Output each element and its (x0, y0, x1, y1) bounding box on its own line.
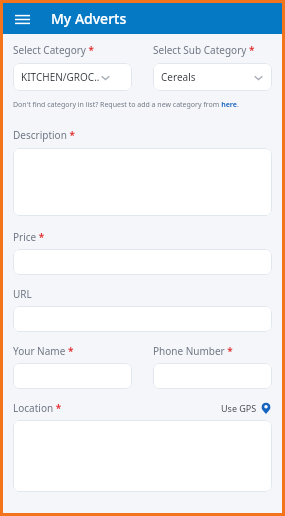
button[interactable]: KITCHEN/GROC.. (13, 63, 132, 91)
button[interactable]: Use GPS (221, 402, 272, 414)
staticText: Select Sub Category * (153, 43, 255, 57)
button[interactable]: Cereals (153, 63, 272, 91)
staticText: Cereals (161, 70, 196, 84)
staticText: KITCHEN/GROC.. (21, 70, 100, 84)
staticText: Use GPS (221, 402, 257, 414)
staticText: Select Category * (13, 43, 94, 57)
staticText: My Adverts (51, 9, 127, 28)
staticText: Description * (13, 128, 75, 142)
staticText: Price * (13, 230, 45, 244)
button[interactable]: Open navigation menu (9, 6, 35, 32)
button[interactable]: URL (13, 306, 272, 332)
button[interactable]: Phone Number (153, 363, 272, 389)
staticText: URL (13, 287, 32, 301)
button[interactable]: Your Name (13, 363, 132, 389)
staticText: Your Name * (13, 344, 74, 358)
button[interactable]: Price (13, 249, 272, 275)
staticText: Phone Number * (153, 344, 233, 358)
staticText: Location * (13, 401, 62, 415)
button[interactable]: Location (13, 420, 272, 492)
button[interactable]: Don't find category in list? Request to … (13, 100, 239, 110)
button[interactable]: Description (13, 148, 272, 216)
